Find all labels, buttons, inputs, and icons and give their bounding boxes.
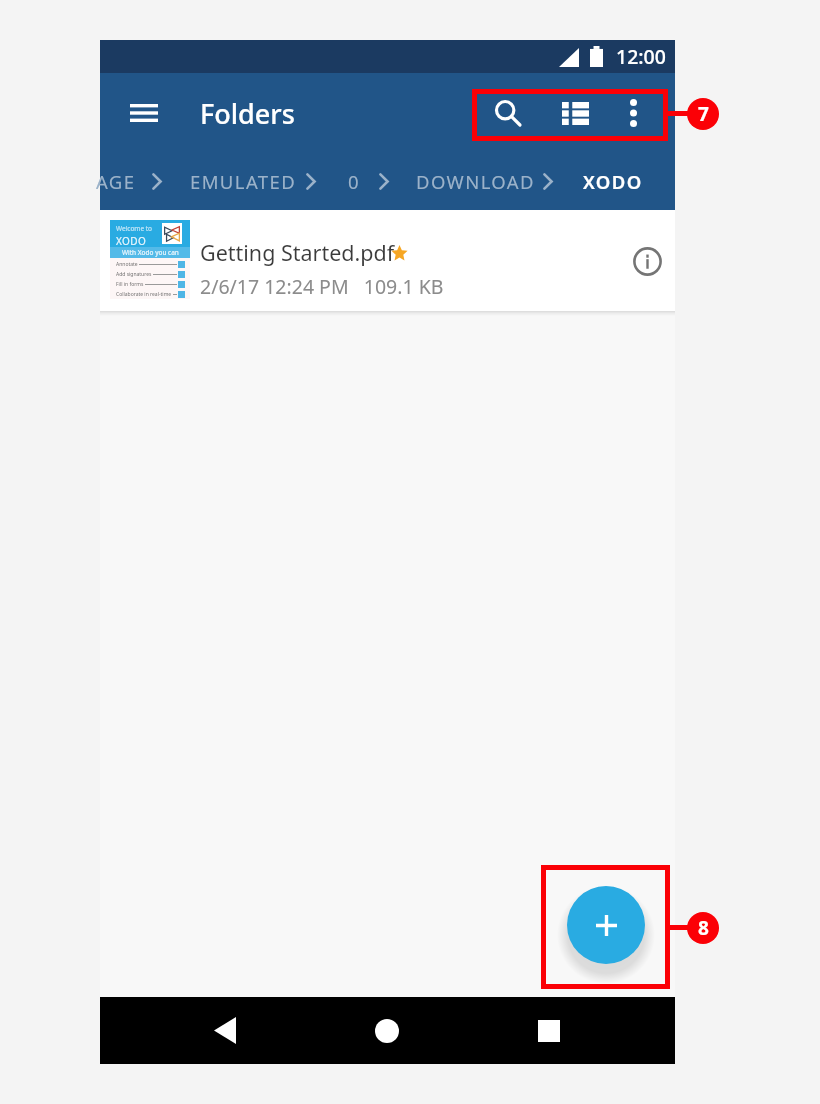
button[interactable]: AGE [94, 153, 138, 210]
button[interactable]: Welcome to [100, 210, 675, 311]
staticText: Annotate [116, 261, 138, 268]
staticText: 0 [348, 169, 360, 194]
staticText: 8 [698, 915, 709, 941]
staticText: 2/6/17 12:24 PM 109.1 KB [200, 273, 444, 300]
staticText: 12:00 [616, 43, 666, 70]
staticText: Getting Started.pdf [200, 238, 395, 267]
button[interactable]: Recent apps [517, 997, 581, 1064]
button[interactable]: EMULATED [188, 153, 299, 210]
button[interactable]: Home [355, 997, 419, 1064]
staticText: With Xodo you can [122, 248, 179, 257]
button[interactable]: Change view mode [549, 87, 601, 139]
button[interactable]: DOWNLOAD [414, 153, 537, 210]
staticText: Collaborate in real-time [116, 291, 172, 298]
button[interactable]: 0 [346, 153, 362, 210]
staticText: AGE [96, 169, 136, 194]
button[interactable]: More options [607, 87, 659, 139]
staticText: DOWNLOAD [416, 169, 535, 194]
button[interactable]: Open navigation menu [120, 89, 168, 137]
button[interactable]: File info [626, 240, 668, 282]
button[interactable]: Search [482, 87, 534, 139]
staticText: Folders [200, 95, 295, 132]
button[interactable]: Back [193, 997, 257, 1064]
staticText: Welcome to [116, 224, 153, 233]
staticText: Fill in forms [116, 281, 144, 288]
button[interactable]: XODO [581, 153, 645, 210]
staticText: Add signatures [116, 271, 152, 278]
staticText: XODO [116, 234, 147, 248]
staticText: EMULATED [190, 169, 297, 194]
staticText: XODO [583, 169, 643, 194]
button[interactable]: Add new file [567, 886, 645, 964]
staticText: 7 [698, 101, 709, 127]
